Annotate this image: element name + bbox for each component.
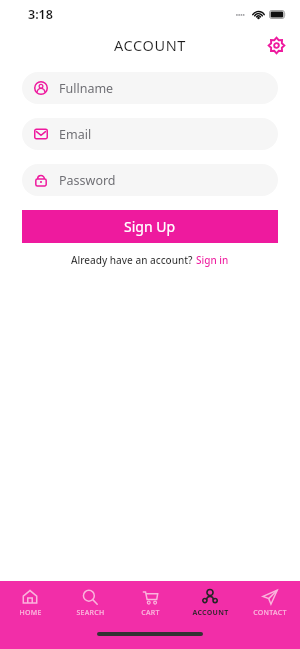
staticText: CART bbox=[141, 608, 160, 618]
staticText: 3:18 bbox=[28, 6, 53, 23]
staticText: CONTACT bbox=[253, 608, 287, 618]
staticText: Fullname bbox=[59, 80, 114, 97]
button[interactable]: SEARCH bbox=[60, 589, 120, 618]
staticText: ACCOUNT bbox=[192, 608, 229, 618]
staticText: Email bbox=[59, 126, 92, 143]
button[interactable]: ACCOUNT bbox=[180, 589, 240, 618]
staticText: Already have an account? bbox=[71, 253, 196, 267]
staticText: Sign Up bbox=[124, 217, 176, 236]
button[interactable]: CART bbox=[120, 589, 180, 618]
staticText: ACCOUNT bbox=[114, 35, 186, 55]
staticText: Sign in bbox=[196, 253, 229, 267]
staticText: Password bbox=[59, 172, 116, 189]
staticText: HOME bbox=[19, 608, 42, 618]
button[interactable]: CONTACT bbox=[240, 589, 300, 618]
button[interactable]: Settings bbox=[263, 32, 289, 58]
button[interactable]: Email bbox=[22, 118, 278, 150]
button[interactable]: Password bbox=[22, 164, 278, 196]
button[interactable]: Fullname bbox=[22, 72, 278, 104]
button[interactable]: HOME bbox=[0, 589, 60, 618]
staticText: SEARCH bbox=[76, 608, 105, 618]
button[interactable]: Sign Up bbox=[22, 210, 278, 243]
button[interactable]: Sign in bbox=[196, 253, 229, 267]
